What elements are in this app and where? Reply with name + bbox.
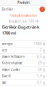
staticText: 4,5 g xyxy=(37,55,45,58)
staticText: 28 g xyxy=(38,68,45,71)
staticText: Fett xyxy=(2,49,7,52)
button[interactable]: Salz xyxy=(0,80,47,86)
button[interactable]: davon Zucker xyxy=(0,67,47,73)
button[interactable]: Hinweis xyxy=(39,7,45,12)
staticText: Produkt bearbeiten xyxy=(9,14,37,17)
staticText: Kohlenhydrate xyxy=(2,61,23,65)
staticText: Angaben pro 100 ml xyxy=(8,20,38,23)
staticText: 1,9 g xyxy=(37,74,45,78)
staticText: Salz xyxy=(2,81,6,84)
button[interactable]: Kohlenhydrate xyxy=(0,60,47,67)
staticText: 0,1 g xyxy=(37,81,45,84)
staticText: Eierlikör-Eisgetränk xyxy=(2,24,39,30)
staticText: 29 g xyxy=(38,61,45,65)
staticText: Eiweiß xyxy=(2,74,11,78)
staticText: davon Zucker xyxy=(2,68,20,71)
staticText: davon Fettsäuren xyxy=(2,55,25,58)
button[interactable]: Produkt bearbeiten xyxy=(0,13,47,18)
staticText: 7 g xyxy=(40,49,45,52)
staticText: 1700 ml xyxy=(2,30,16,36)
button[interactable]: Fett xyxy=(0,47,47,54)
staticText: 1000 kJ xyxy=(34,42,45,46)
staticText: ! xyxy=(42,8,43,11)
button[interactable]: Energie xyxy=(0,41,47,47)
staticText: Produkt xyxy=(17,1,29,4)
staticText: Energie xyxy=(2,42,13,46)
button[interactable]: Eiweiß xyxy=(0,73,47,79)
staticText: Eierlikör xyxy=(2,8,13,11)
button[interactable]: davon Fettsäuren xyxy=(0,54,47,60)
